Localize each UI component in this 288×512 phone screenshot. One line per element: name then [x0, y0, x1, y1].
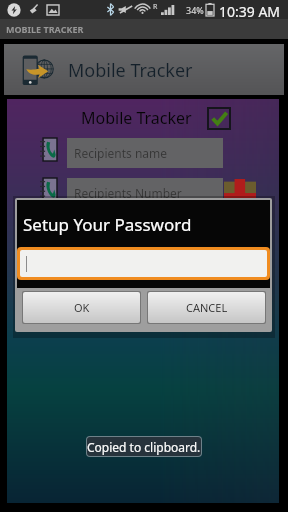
- staticText: Mobile Tracker: [68, 58, 193, 83]
- staticText: 34%: [186, 4, 204, 16]
- staticText: Recipients Number: [74, 185, 182, 201]
- staticText: Recipients name: [74, 145, 168, 161]
- staticText: OK: [74, 300, 90, 315]
- button[interactable]: OK: [23, 292, 140, 323]
- button[interactable]: Mobile Tracker: [4, 44, 284, 95]
- staticText: Copied to clipboard.: [87, 439, 201, 455]
- button[interactable]: Recipients name: [67, 138, 223, 168]
- staticText: R: [153, 2, 158, 12]
- staticText: MOBILE TRACKER: [6, 23, 84, 35]
- button[interactable]: [20, 250, 267, 277]
- button[interactable]: Enable Mobile Tracker: [207, 107, 231, 130]
- staticText: Mobile Tracker: [81, 107, 192, 129]
- staticText: Setup Your Password: [23, 213, 192, 236]
- staticText: 10:39 AM: [219, 2, 281, 19]
- button[interactable]: Recipients Number: [67, 178, 223, 208]
- staticText: CANCEL: [186, 300, 228, 315]
- button[interactable]: Pick contact: [224, 179, 256, 201]
- button[interactable]: CANCEL: [148, 292, 265, 323]
